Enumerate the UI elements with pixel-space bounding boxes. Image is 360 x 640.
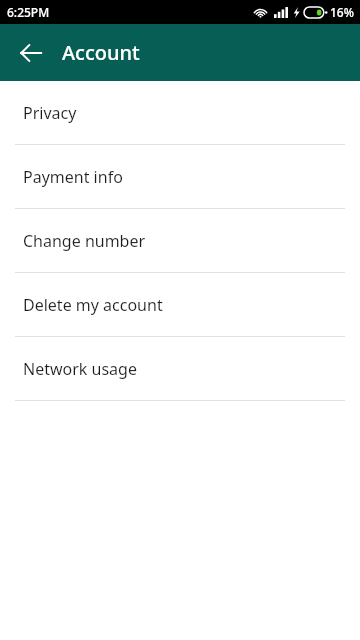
staticText: 16%: [330, 4, 354, 20]
staticText: Delete my account: [23, 294, 163, 316]
button[interactable]: Network usage: [0, 337, 360, 400]
button[interactable]: Back: [9, 31, 53, 75]
button[interactable]: Delete my account: [0, 273, 360, 336]
button[interactable]: Change number: [0, 209, 360, 272]
staticText: Network usage: [23, 358, 137, 380]
button[interactable]: Privacy: [0, 81, 360, 144]
button[interactable]: Payment info: [0, 145, 360, 208]
staticText: 6:25PM: [7, 4, 50, 20]
staticText: Account: [62, 39, 140, 66]
staticText: Privacy: [23, 102, 77, 124]
staticText: Change number: [23, 230, 146, 252]
staticText: Payment info: [23, 166, 123, 188]
